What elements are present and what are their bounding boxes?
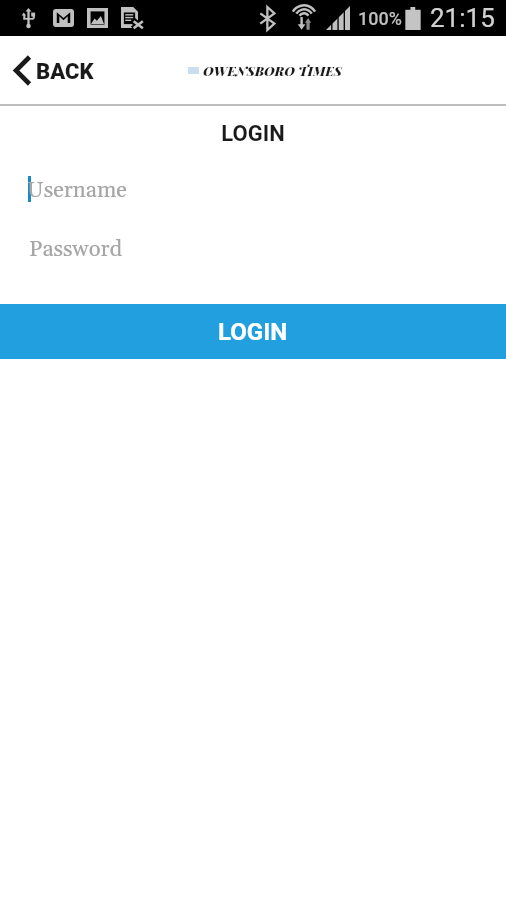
button[interactable]: Password <box>0 218 506 270</box>
staticText: Password <box>29 236 123 264</box>
button[interactable]: LOGIN <box>0 304 506 359</box>
staticText: 100% <box>358 8 402 29</box>
staticText: LOGIN <box>218 318 288 346</box>
button[interactable]: OWENSBORO TIMES <box>182 36 348 104</box>
staticText: LOGIN <box>221 121 285 147</box>
button[interactable]: Username <box>0 160 506 212</box>
staticText: Username <box>27 177 127 205</box>
other: Back <box>14 55 31 86</box>
staticText: OWENSBORO TIMES <box>203 62 342 79</box>
staticText: 21:15 <box>430 3 495 33</box>
staticText: BACK <box>36 59 94 85</box>
button[interactable]: Back <box>14 36 104 104</box>
